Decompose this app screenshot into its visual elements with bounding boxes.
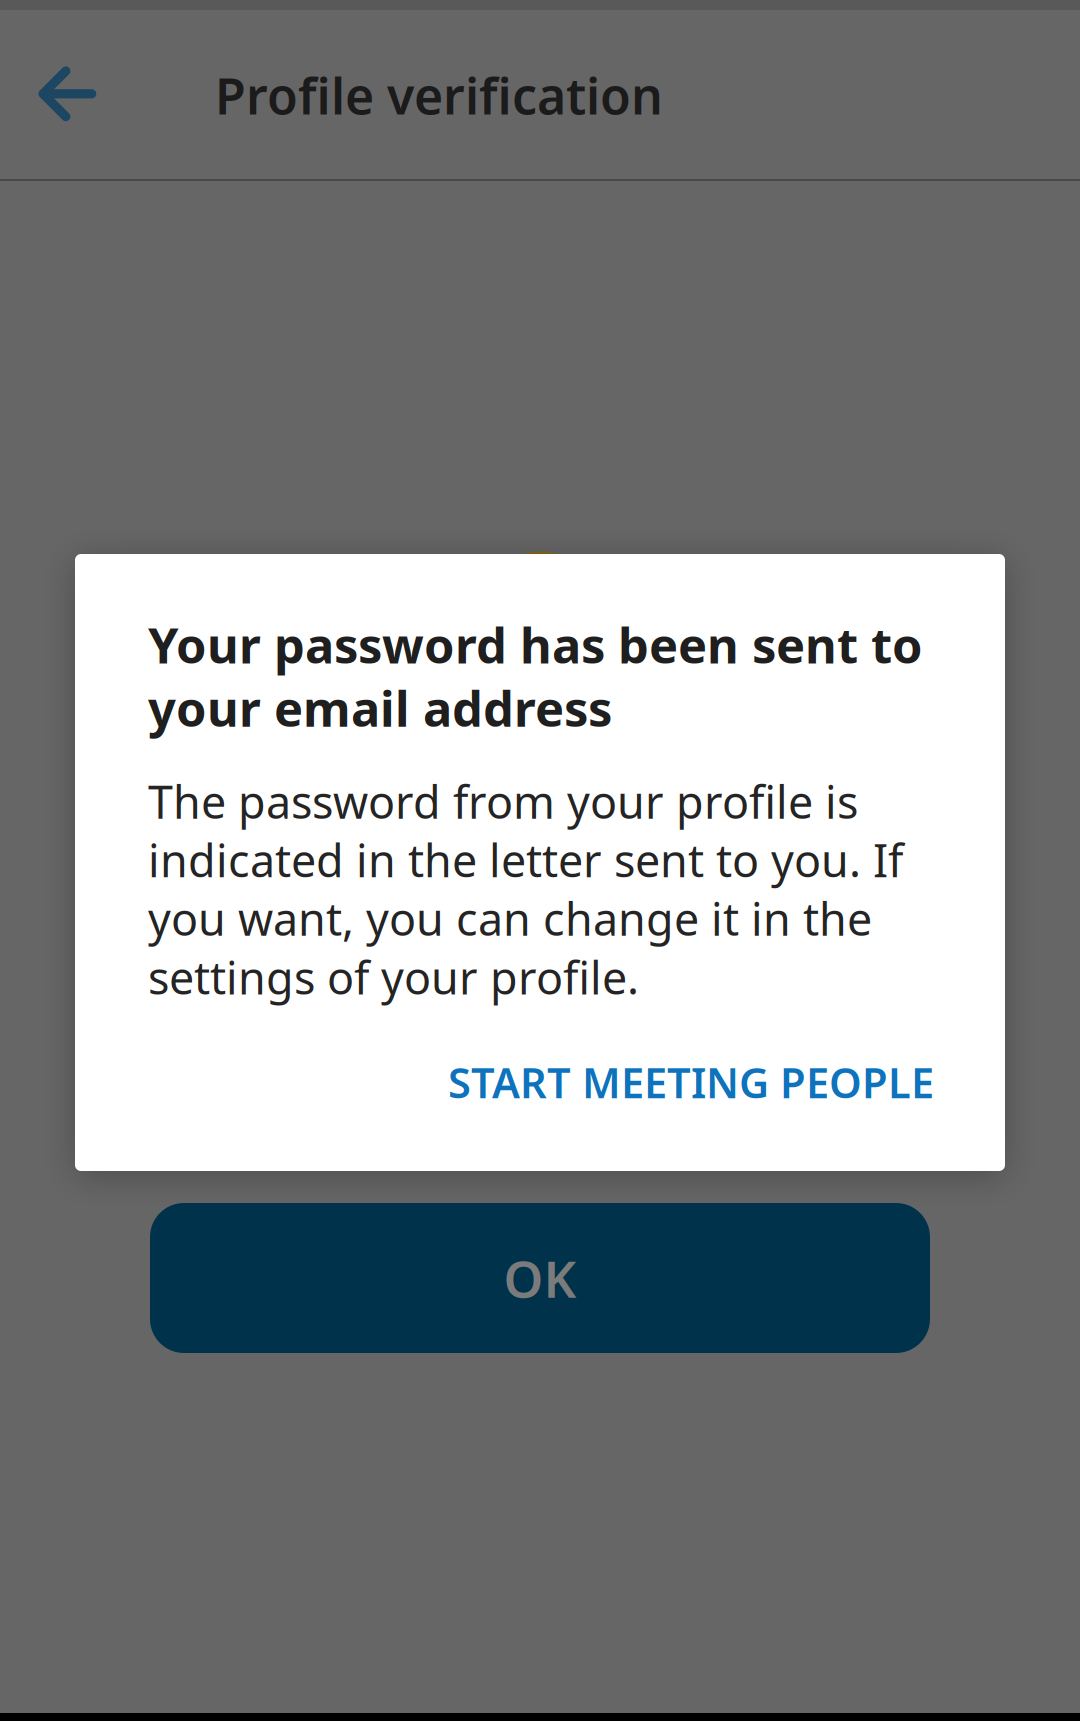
staticText: Your password has been sent to your emai… (148, 613, 923, 739)
staticText: Profile verification (215, 61, 663, 129)
staticText: OK (503, 1243, 576, 1312)
button[interactable]: Back (0, 10, 150, 180)
button[interactable]: OK (150, 1203, 930, 1353)
staticText: The password from your profile is indica… (148, 772, 903, 1006)
button[interactable]: START MEETING PEOPLE (386, 1042, 934, 1122)
staticText: START MEETING PEOPLE (448, 1054, 934, 1110)
